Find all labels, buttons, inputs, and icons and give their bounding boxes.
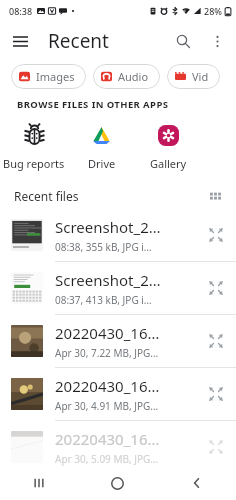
button[interactable]: Show roots [4, 25, 36, 57]
button[interactable]: Open in full [196, 215, 236, 255]
staticText: Screenshot_2… [55, 217, 161, 237]
staticText: Drive [88, 156, 116, 171]
button[interactable]: Recent apps [0, 466, 78, 500]
button[interactable]: Audio [93, 64, 160, 89]
staticText: Screenshot_2… [55, 270, 161, 290]
button[interactable]: 20220430_16… [0, 315, 236, 367]
button[interactable]: Grid view [202, 183, 228, 209]
staticText: 28% [204, 5, 222, 17]
staticText: Vid [192, 69, 209, 84]
staticText: Apr 30, 5.09 MB, JPG… [55, 452, 159, 466]
staticText: Apr 30, 4.91 MB, JPG… [55, 399, 159, 413]
staticText: 20220430_16… [55, 429, 160, 449]
button[interactable]: Screenshot_2… [0, 262, 236, 314]
button[interactable]: Vid [167, 64, 220, 89]
button[interactable]: 20220430_16… [0, 368, 236, 420]
staticText: 08:37, 413 kB, JPG i… [55, 293, 152, 307]
button[interactable]: Open in full [196, 268, 236, 308]
button[interactable]: Drive [68, 119, 135, 175]
button[interactable]: Open in full [196, 374, 236, 414]
staticText: 20220430_16… [55, 323, 160, 343]
staticText: BROWSE FILES IN OTHER APPS [17, 98, 169, 111]
staticText: Audio [118, 69, 149, 84]
staticText: Recent [48, 28, 109, 54]
staticText: Gallery [150, 156, 187, 171]
staticText: Apr 30, 7.22 MB, JPG… [55, 346, 159, 360]
staticText: Images [36, 69, 75, 84]
button[interactable]: More options [200, 24, 234, 58]
staticText: Recent files [14, 188, 79, 204]
button[interactable]: Screenshot_2… [0, 209, 236, 261]
button[interactable]: Bug reports [0, 119, 68, 175]
staticText: 20220430_16… [55, 376, 160, 396]
staticText: Bug reports [3, 156, 65, 171]
button[interactable]: Search [166, 24, 200, 58]
button[interactable]: Home [78, 466, 157, 500]
button[interactable]: Gallery [135, 119, 202, 175]
button[interactable]: Open in full [196, 321, 236, 361]
staticText: 08:38, 355 kB, JPG i… [55, 240, 152, 254]
button[interactable]: Open in full [196, 427, 236, 467]
staticText: 08:38 [9, 5, 33, 17]
button[interactable]: Back [157, 466, 236, 500]
button[interactable]: Images [11, 64, 86, 89]
button[interactable]: 20220430_16… [0, 421, 236, 473]
